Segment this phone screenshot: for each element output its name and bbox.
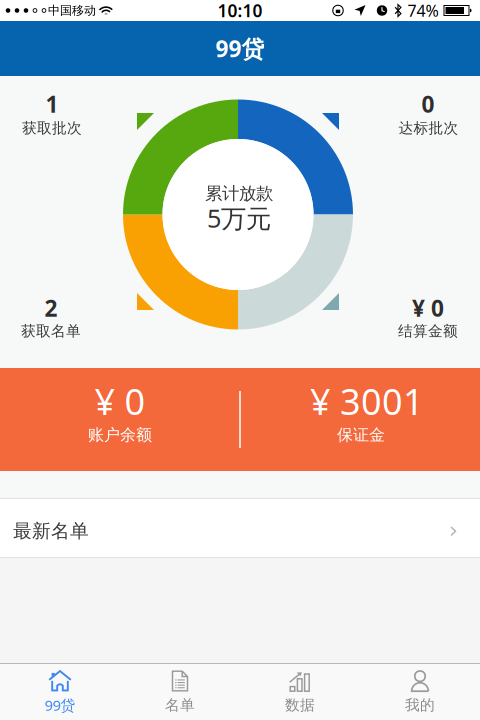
staticText: 99贷 <box>215 33 264 63</box>
staticText: 账户余额 <box>88 425 152 445</box>
button[interactable]: 最新名单 <box>0 499 480 557</box>
staticText: 保证金 <box>337 425 385 445</box>
staticText: 获取名单 <box>21 322 81 340</box>
staticText: 我的 <box>405 696 435 714</box>
staticText: 中国移动 <box>48 3 96 18</box>
staticText: 1 <box>45 89 58 119</box>
staticText: 0 <box>421 89 434 119</box>
staticText: 99贷 <box>44 695 75 715</box>
staticText: 10:10 <box>217 0 262 22</box>
staticText: 达标批次 <box>398 119 458 137</box>
button[interactable]: 99贷 <box>5 665 115 719</box>
staticText: ¥ 3001 <box>310 377 424 425</box>
staticText: 累计放款 <box>205 183 273 204</box>
staticText: 获取批次 <box>22 119 82 137</box>
button[interactable]: 数据 <box>245 665 355 719</box>
staticText: 名单 <box>165 696 195 714</box>
staticText: 数据 <box>285 696 315 714</box>
button[interactable]: ¥ 3001 <box>241 368 480 471</box>
staticText: ¥ 0 <box>94 377 145 425</box>
staticText: 最新名单 <box>13 519 89 542</box>
button[interactable]: ¥ 0 <box>0 368 239 471</box>
staticText: 74% <box>407 0 438 21</box>
staticText: 结算金额 <box>398 322 458 340</box>
button[interactable]: 名单 <box>125 665 235 719</box>
staticText: 2 <box>44 293 57 323</box>
staticText: 5万元 <box>207 201 271 235</box>
button[interactable]: 我的 <box>365 665 475 719</box>
staticText: ¥ 0 <box>412 293 444 323</box>
